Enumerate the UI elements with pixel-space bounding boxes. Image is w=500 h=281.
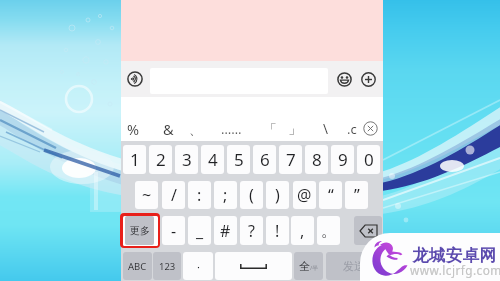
staticText: /半 [310,264,319,272]
button[interactable]: 4 [201,145,224,174]
staticText: % [127,119,140,139]
button[interactable]: 0 [357,145,380,174]
button[interactable]: : [188,181,211,209]
button[interactable]: 3 [175,145,198,174]
staticText: 7 [286,148,296,171]
staticText: : [197,184,202,206]
button[interactable]: 9 [331,145,354,174]
button[interactable]: 6 [253,145,276,174]
button[interactable]: - [162,216,185,245]
staticText: _ [196,220,204,242]
staticText: 3 [182,148,192,171]
button[interactable]: 、 [181,116,209,141]
button[interactable]: ~ [135,181,158,209]
staticText: 」 [288,121,301,137]
staticText: - [171,220,177,242]
button[interactable]: 8 [305,145,328,174]
staticText: 9 [338,148,348,171]
button[interactable]: 发送 [326,252,383,280]
staticText: www.lcjrfg.com [410,262,500,278]
button[interactable]: @ [293,181,316,209]
button[interactable]: 2 [149,145,172,174]
staticText: ” [354,184,360,206]
button[interactable]: “ [319,181,342,209]
button[interactable]: ( [240,181,263,209]
staticText: 、 [189,121,202,137]
button[interactable]: · [183,252,213,280]
button[interactable]: 1 [123,145,146,174]
button[interactable]: Voice input [127,71,143,87]
staticText: ; [223,184,228,206]
staticText: \ [323,120,329,138]
button[interactable]: Space [215,252,292,280]
staticText: ! [275,220,280,242]
button[interactable]: …… [217,116,245,141]
staticText: 发送 [343,259,365,273]
staticText: 4 [208,148,218,171]
button[interactable]: 更多 [125,216,154,245]
button[interactable]: ” [345,181,368,209]
staticText: 。 [321,221,337,241]
staticText: 更多 [130,224,150,237]
button[interactable]: \ [312,116,340,141]
button[interactable]: ABC [123,252,152,280]
button[interactable]: .c [338,116,366,141]
button[interactable]: # [214,216,237,245]
button[interactable]: Add [361,72,376,87]
staticText: # [220,220,231,242]
button[interactable]: Emoji [337,72,352,87]
staticText: 5 [234,148,244,171]
staticText: “ [328,184,334,206]
staticText: 1 [130,148,140,171]
staticText: 6 [260,148,270,171]
button[interactable]: Close symbols [363,121,378,136]
staticText: ) [275,184,280,206]
button[interactable]: ! [266,216,289,245]
button[interactable]: % [119,116,147,141]
staticText: ABC [128,260,147,273]
button[interactable]: 全 [294,252,323,280]
staticText: ? [248,220,255,242]
staticText: 龙城安卓网 [412,245,496,266]
button[interactable]: Backspace [354,216,382,245]
staticText: 123 [159,260,176,273]
button[interactable]: 123 [153,252,181,280]
button[interactable]: _ [188,216,211,245]
button[interactable]: 5 [227,145,250,174]
button[interactable]: ? [240,216,263,245]
button[interactable]: / [162,181,185,209]
button[interactable]: 」 [280,116,308,141]
button[interactable]: ; [214,181,237,209]
staticText: ~ [142,184,152,206]
staticText: ( [249,184,254,206]
staticText: 「 [264,121,277,137]
staticText: · [197,259,200,274]
staticText: 8 [312,148,322,171]
button[interactable]: 「 [256,116,284,141]
staticText: / [171,184,177,206]
staticText: .c [347,120,357,138]
button[interactable]: 。 [317,216,340,245]
staticText: …… [221,120,242,138]
button[interactable]: & [154,116,182,141]
staticText: 全 [299,259,310,273]
button[interactable]: , [291,216,314,245]
staticText: & [163,119,174,139]
staticText: 2 [156,148,166,171]
staticText: @ [297,184,312,206]
staticText: 0 [364,148,374,171]
button[interactable]: 7 [279,145,302,174]
staticText: , [300,220,305,242]
button[interactable]: ) [266,181,289,209]
